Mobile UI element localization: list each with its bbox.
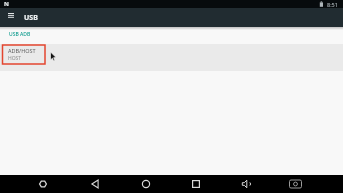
- staticText: ADB/HOST: [8, 47, 36, 54]
- button[interactable]: [286, 175, 343, 193]
- button[interactable]: ADB/HOST: [0, 44, 343, 71]
- button[interactable]: [0, 175, 58, 193]
- button[interactable]: [229, 175, 286, 193]
- button[interactable]: [115, 175, 172, 193]
- staticText: USB ADB: [9, 31, 31, 38]
- button[interactable]: [172, 175, 229, 193]
- button[interactable]: [58, 175, 115, 193]
- staticText: N: [4, 0, 9, 8]
- staticText: HOST: [8, 55, 22, 62]
- staticText: USB: [24, 13, 38, 23]
- button[interactable]: [4, 9, 17, 22]
- staticText: 8:51: [327, 1, 338, 8]
